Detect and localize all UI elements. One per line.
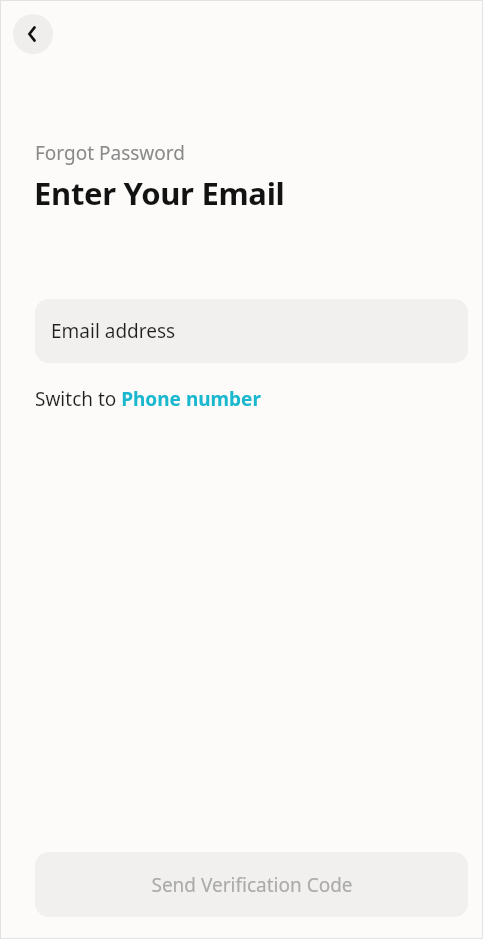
staticText: Send Verification Code — [151, 872, 353, 898]
staticText: Switch to Phone number — [35, 386, 261, 412]
button[interactable]: Email address — [35, 299, 468, 363]
staticText: Forgot Password — [35, 140, 185, 166]
button[interactable]: Back — [13, 14, 53, 54]
button[interactable]: Switch to Phone number — [35, 386, 261, 412]
staticText: Enter Your Email — [34, 172, 285, 214]
staticText: Email address — [51, 318, 176, 344]
button[interactable]: Send Verification Code — [35, 852, 468, 917]
